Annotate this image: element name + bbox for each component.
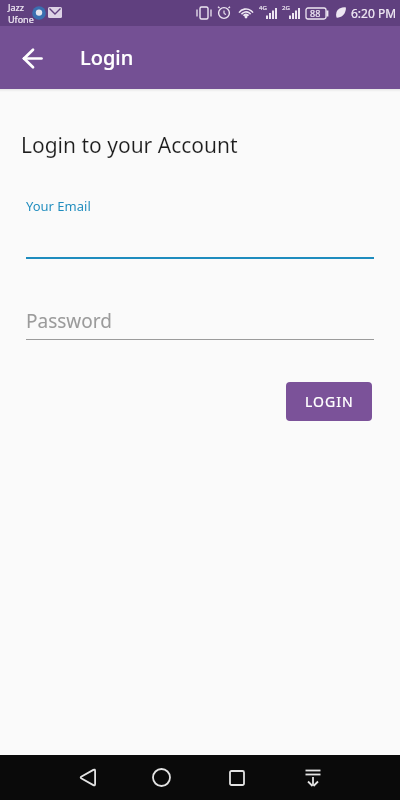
staticText: Login <box>80 44 134 71</box>
staticText: LOGIN <box>305 392 354 411</box>
button[interactable]: LOGIN <box>286 382 372 421</box>
staticText: Your Email <box>26 197 91 215</box>
staticText: 2G <box>282 4 290 12</box>
staticText: Ufone <box>8 13 34 25</box>
staticText: 88 <box>310 7 321 19</box>
staticText: 4G <box>259 4 267 12</box>
button[interactable] <box>285 755 341 800</box>
button[interactable] <box>209 755 265 800</box>
staticText: Jazz <box>8 1 24 13</box>
button[interactable] <box>16 42 48 74</box>
staticText: Login to your Account <box>21 131 238 160</box>
button[interactable] <box>133 755 189 800</box>
button[interactable]: Password <box>26 308 374 340</box>
staticText: 6:20 PM <box>351 5 397 21</box>
button[interactable] <box>59 755 115 800</box>
staticText: Password <box>26 308 112 334</box>
